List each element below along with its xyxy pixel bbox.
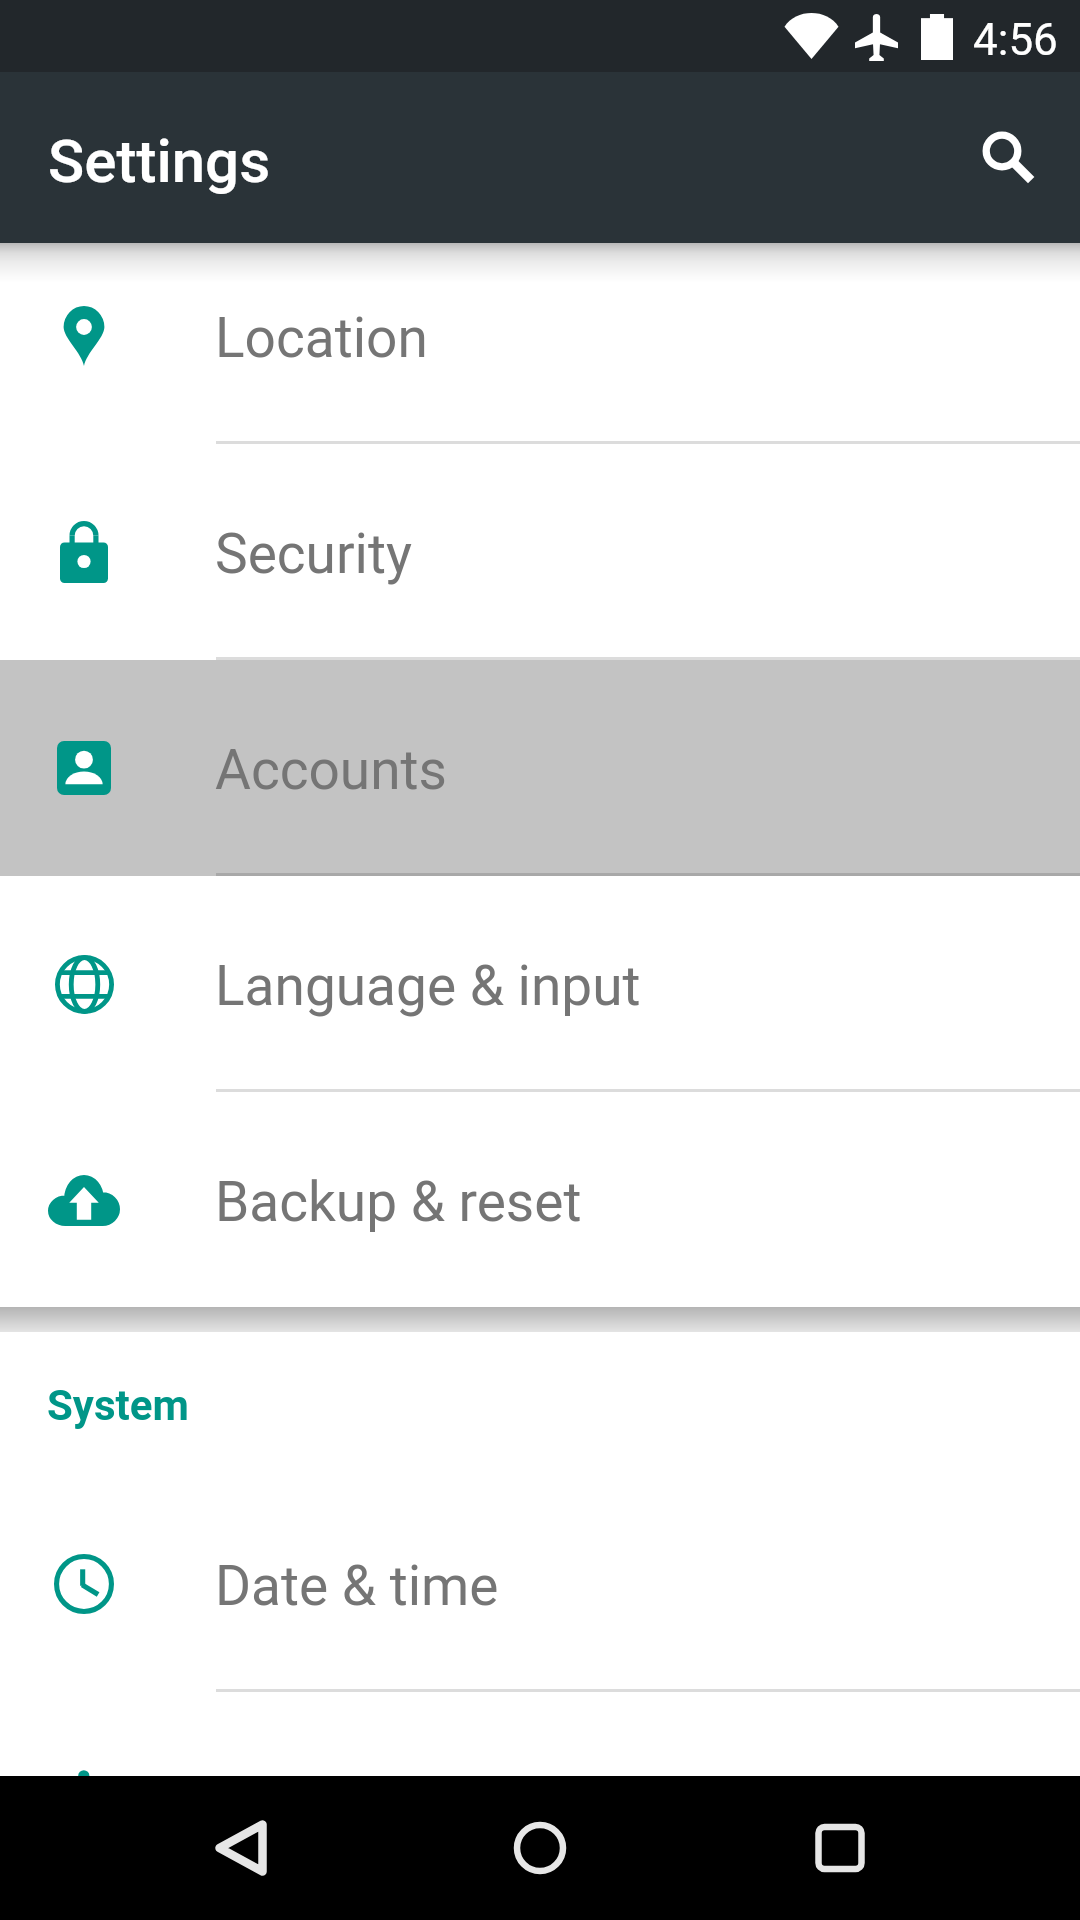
button[interactable]: Home (485, 1793, 595, 1903)
staticText: Backup & reset (215, 1170, 582, 1234)
button[interactable]: Backup & reset (0, 1092, 1080, 1308)
staticText: Accounts (215, 738, 447, 802)
staticText: Date & time (215, 1554, 499, 1618)
staticText: Settings (48, 126, 271, 196)
staticText: Language & input (215, 954, 641, 1018)
button[interactable]: Search (953, 103, 1057, 207)
button[interactable]: Recents (785, 1793, 895, 1903)
staticText: Location (215, 306, 428, 370)
staticText: System (47, 1381, 189, 1430)
button[interactable]: Date & time (0, 1476, 1080, 1692)
button[interactable]: Accounts (0, 660, 1080, 876)
button[interactable]: Security (0, 444, 1080, 660)
button[interactable]: Language & input (0, 876, 1080, 1092)
staticText: 4:56 (973, 14, 1058, 66)
staticText: Security (215, 522, 412, 586)
button[interactable]: Location (0, 228, 1080, 444)
button[interactable]: Back (185, 1793, 295, 1903)
